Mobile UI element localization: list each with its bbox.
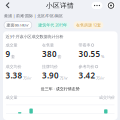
staticText: 成交量 (6, 43, 18, 47)
staticText: 建面88-140㎡ (6, 22, 29, 28)
staticText: 套 (11, 54, 15, 59)
staticText: 挂牌均价 (42, 64, 58, 69)
staticText: 30.55 (78, 49, 100, 59)
staticText: 成交量 (6, 95, 18, 100)
staticText: 380 (42, 49, 57, 59)
staticText: 万/㎡ (96, 75, 105, 81)
staticText: 3.42 (78, 70, 95, 81)
staticText: 9 (6, 49, 11, 59)
staticText: 成交均价 (6, 64, 22, 69)
button[interactable]: More (91, 2, 102, 9)
staticText: % (101, 54, 104, 59)
staticText: 在售量 (42, 43, 54, 47)
staticText: 3.90 (42, 70, 59, 81)
staticText: 近三年 · 成交行情走势 (41, 86, 80, 91)
staticText: 近3个月该小区成交数据统计分析 (6, 34, 64, 39)
staticText: 参考均价 (78, 64, 94, 69)
staticText: 套 (57, 54, 61, 59)
staticText: 带看率 (78, 43, 90, 47)
staticText: 建筑年代 2019年 (38, 22, 67, 28)
staticText: 在售房源 12套 (76, 22, 101, 28)
staticText: 成交均价 (99, 95, 115, 100)
staticText: 黄浦 | 前滩·国际 | 北区/中区/南区 (4, 13, 63, 18)
button[interactable]: Back (2, 0, 13, 11)
staticText: 万/㎡ (23, 75, 32, 81)
staticText: 万/㎡ (59, 75, 68, 81)
staticText: 小区详情 (46, 1, 74, 10)
staticText: 3.38 (6, 70, 23, 81)
button[interactable]: Locate (106, 2, 115, 9)
